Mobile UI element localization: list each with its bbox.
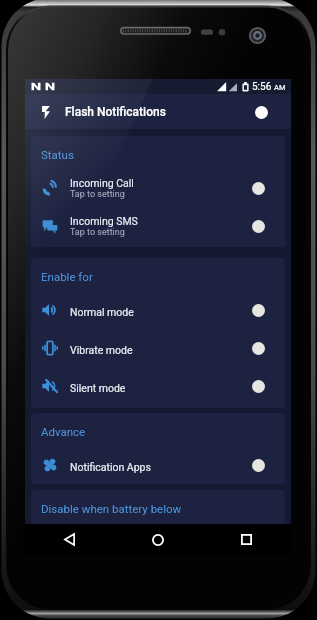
staticText: Flash Notifications [65, 105, 166, 119]
button[interactable]: Normal mode [31, 291, 285, 329]
staticText: Incoming Call [70, 177, 134, 189]
staticText: AM [274, 83, 286, 92]
button[interactable]: Flash [34, 101, 56, 123]
staticText: Vibrate mode [70, 344, 133, 356]
staticText: Disable when battery below [41, 502, 182, 515]
button[interactable]: Notification Apps [31, 446, 285, 484]
staticText: Advance [41, 425, 86, 438]
staticText: Tap to setting [70, 189, 125, 200]
button[interactable]: Recent apps [202, 524, 291, 555]
button[interactable]: Incoming SMS [31, 207, 285, 245]
button[interactable]: Silent mode [31, 367, 285, 405]
button[interactable]: Enable flash notifications [245, 96, 277, 128]
button[interactable]: Home [113, 524, 202, 555]
staticText: Silent mode [70, 382, 126, 394]
staticText: Tap to setting [70, 227, 125, 238]
staticText: 5:56 [252, 81, 272, 93]
staticText: Enable for [41, 270, 93, 283]
button[interactable]: Back [25, 524, 113, 555]
staticText: Status [41, 148, 74, 161]
button[interactable]: Incoming Call [31, 169, 285, 207]
button[interactable]: Vibrate mode [31, 329, 285, 367]
staticText: Notification Apps [70, 461, 151, 473]
staticText: Incoming SMS [70, 215, 138, 227]
staticText: Normal mode [70, 306, 134, 318]
